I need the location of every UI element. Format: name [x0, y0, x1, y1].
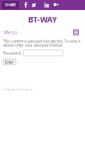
button[interactable]: Share on LinkedIn [44, 1, 49, 9]
staticText: BT-WAY [28, 14, 57, 25]
button[interactable]: Menu [4, 29, 17, 35]
staticText: SHARE [5, 3, 16, 7]
staticText: This content is password protected. To v… [3, 38, 80, 44]
button[interactable]: Share on Google Plus [53, 1, 59, 9]
staticText: © Copyright 2014 BT-Way Ltd [3, 88, 32, 91]
staticText: please enter your password below: [3, 42, 63, 48]
button[interactable]: Share on Facebook [23, 1, 28, 9]
staticText: Menu [4, 29, 17, 35]
button[interactable]: Enter [3, 59, 16, 65]
staticText: Enter [5, 59, 14, 65]
button[interactable]: Share on Twitter [31, 1, 36, 9]
button[interactable]: SHARE [2, 1, 19, 9]
staticText: Password: [3, 50, 21, 56]
button[interactable]: BT-WAY [0, 10, 85, 28]
button[interactable]: Open navigation menu [73, 29, 79, 35]
